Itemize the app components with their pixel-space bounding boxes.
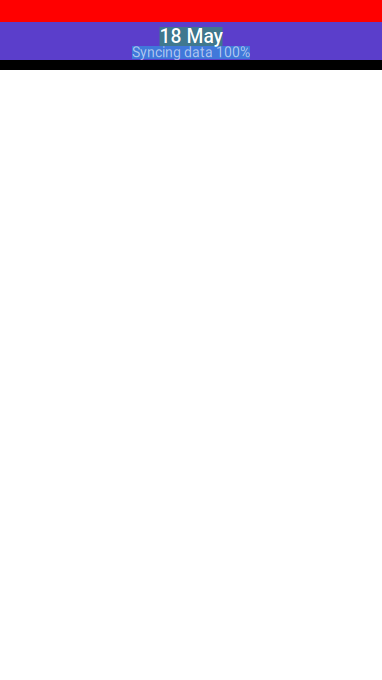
staticText: 18 May [159, 25, 222, 48]
staticText: Syncing data 100% [132, 44, 250, 61]
